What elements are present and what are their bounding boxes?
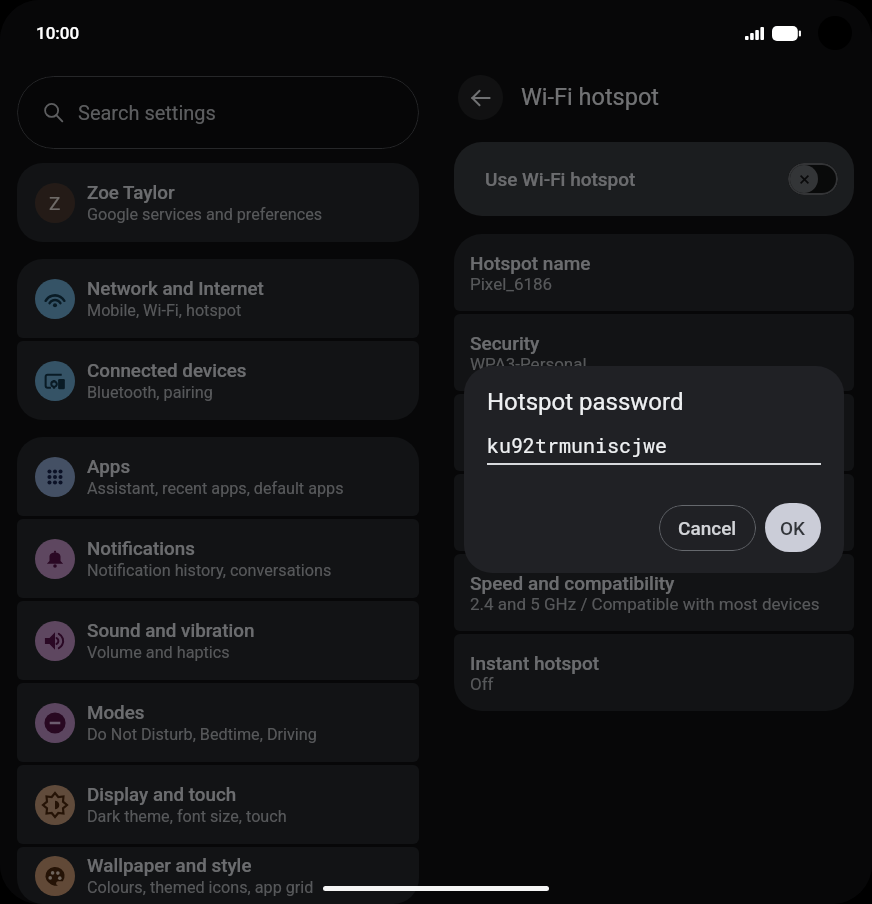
staticText: Display and touch <box>87 784 237 806</box>
staticText: Cancel <box>678 517 737 539</box>
staticText: Volume and haptics <box>87 643 230 662</box>
staticText: WPA3-Personal <box>470 354 587 374</box>
staticText: Dark theme, font size, touch <box>87 807 287 826</box>
staticText: Notifications <box>87 538 195 560</box>
staticText: Hotspot name <box>470 252 591 274</box>
staticText: Pixel_6186 <box>470 274 553 294</box>
button[interactable]: Hotspot password <box>454 394 854 471</box>
staticText: Turn off hotspot automatically <box>470 492 728 514</box>
staticText: Bluetooth, pairing <box>87 383 213 402</box>
staticText: Speed and compatibility <box>470 572 675 594</box>
staticText: Modes <box>87 702 145 724</box>
staticText: Search settings <box>78 101 216 124</box>
staticText: Hotspot password <box>487 388 684 416</box>
button[interactable]: Connected devices <box>17 341 419 420</box>
staticText: •••••••• <box>470 434 516 454</box>
staticText: Connected devices <box>87 360 247 382</box>
staticText: Google services and preferences <box>87 205 323 224</box>
button[interactable]: Sound and vibration <box>17 601 419 680</box>
button[interactable]: Notifications <box>17 519 419 598</box>
staticText: Network and Internet <box>87 278 264 300</box>
staticText: Security <box>470 332 540 354</box>
button[interactable]: Apps <box>17 437 419 516</box>
staticText: Colours, themed icons, app grid <box>87 878 314 897</box>
button[interactable]: Wallpaper and style <box>17 847 419 904</box>
staticText: Z <box>49 192 61 214</box>
staticText: 2.4 and 5 GHz / Compatible with most dev… <box>470 594 820 614</box>
staticText: Apps <box>87 456 131 478</box>
button[interactable]: OK <box>765 503 821 552</box>
staticText: Do Not Disturb, Bedtime, Driving <box>87 725 317 744</box>
button[interactable]: Hotspot name <box>454 234 854 311</box>
staticText: Off <box>470 674 494 694</box>
button[interactable]: Network and Internet <box>17 259 419 338</box>
button[interactable]: Z <box>17 163 419 242</box>
button[interactable]: Modes <box>17 683 419 762</box>
staticText: Hotspot password <box>470 412 626 434</box>
button[interactable]: Instant hotspot <box>454 634 854 711</box>
button[interactable]: Security <box>454 314 854 391</box>
staticText: OK <box>780 517 806 539</box>
button[interactable]: Turn off hotspot automatically <box>454 474 854 551</box>
staticText: Mobile, Wi-Fi, hotspot <box>87 301 242 320</box>
staticText: Zoe Taylor <box>87 182 175 204</box>
staticText: Sound and vibration <box>87 620 255 642</box>
button[interactable]: Use Wi-Fi hotspot <box>454 142 854 216</box>
staticText: Instant hotspot <box>470 652 600 674</box>
staticText: Wallpaper and style <box>87 855 252 877</box>
staticText: ku92trmuniscjwe <box>487 432 668 458</box>
button[interactable]: Search settings <box>17 76 419 149</box>
staticText: Wi-Fi hotspot <box>521 83 660 111</box>
button[interactable]: Speed and compatibility <box>454 554 854 631</box>
staticText: Notification history, conversations <box>87 561 332 580</box>
staticText: Assistant, recent apps, default apps <box>87 479 344 498</box>
staticText: 10:00 <box>36 23 80 43</box>
button[interactable]: Back <box>458 75 503 120</box>
button[interactable]: Display and touch <box>17 765 419 844</box>
button[interactable]: Cancel <box>659 505 756 551</box>
staticText: Use Wi-Fi hotspot <box>485 168 636 190</box>
